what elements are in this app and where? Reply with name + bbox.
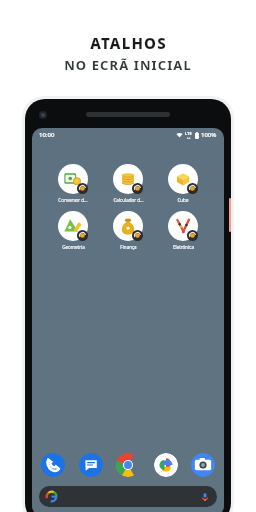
button[interactable]: Finança bbox=[104, 211, 152, 250]
staticText: Conversor d… bbox=[58, 197, 88, 203]
button[interactable]: Eletrónica bbox=[159, 211, 207, 250]
button[interactable]: Camera bbox=[191, 453, 215, 477]
button[interactable]: Geometria bbox=[49, 211, 97, 250]
button[interactable]: Photos bbox=[154, 453, 178, 477]
staticText: Geometria bbox=[62, 244, 85, 250]
staticText: ++ bbox=[187, 136, 191, 140]
button[interactable]: Voice search bbox=[39, 486, 217, 507]
staticText: ATALHOS bbox=[90, 33, 167, 53]
staticText: 100% bbox=[201, 131, 217, 139]
staticText: Cubo bbox=[177, 197, 189, 203]
button[interactable]: Conversor de moeda bbox=[49, 164, 97, 203]
button[interactable]: Messages bbox=[79, 453, 103, 477]
staticText: Calculador d… bbox=[113, 197, 144, 203]
staticText: LTE bbox=[185, 131, 192, 136]
staticText: 10:00 bbox=[39, 131, 55, 139]
staticText: NO ECRÃ INICIAL bbox=[64, 56, 192, 74]
button[interactable]: Phone bbox=[41, 453, 65, 477]
staticText: Eletrónica bbox=[173, 244, 194, 250]
other: Voice search bbox=[200, 492, 210, 502]
other: Power button bbox=[229, 198, 231, 232]
button[interactable]: Cubo bbox=[159, 164, 207, 203]
staticText: Finança bbox=[120, 244, 137, 250]
button[interactable]: Chrome bbox=[116, 453, 140, 477]
button[interactable]: Calculadora de moeda bbox=[104, 164, 152, 203]
